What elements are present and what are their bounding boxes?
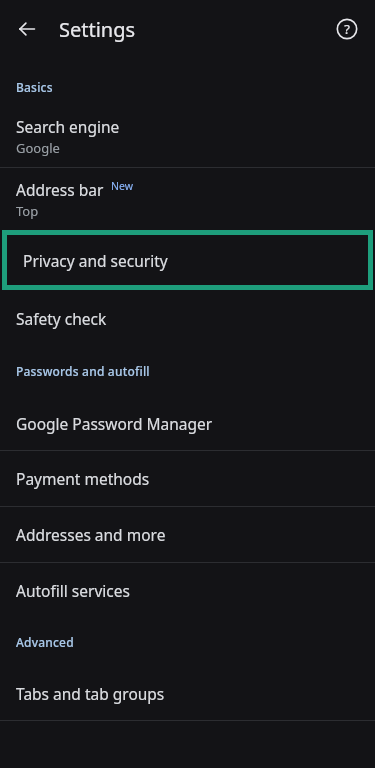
staticText: Safety check	[16, 308, 107, 329]
staticText: Tabs and tab groups	[16, 683, 165, 704]
staticText: Basics	[16, 79, 53, 95]
button[interactable]: Autofill services	[0, 563, 375, 618]
staticText: ?	[344, 20, 350, 38]
staticText: Payment methods	[16, 468, 150, 489]
button[interactable]: Addresses and more	[0, 507, 375, 562]
staticText: Advanced	[16, 634, 74, 650]
staticText: Search engine	[16, 116, 120, 137]
staticText: Privacy and security	[23, 250, 168, 271]
button[interactable]: Privacy and security	[0, 230, 375, 290]
staticText: Address bar	[16, 179, 104, 200]
staticText: Google	[16, 139, 60, 157]
staticText: Google Password Manager	[16, 413, 213, 434]
staticText: Settings	[59, 16, 136, 43]
button[interactable]: Back	[9, 11, 45, 47]
staticText: Autofill services	[16, 580, 130, 601]
staticText: Top	[16, 202, 39, 220]
button[interactable]: Help and feedback	[327, 9, 367, 49]
button[interactable]: Address bar	[0, 168, 375, 230]
button[interactable]: Payment methods	[0, 451, 375, 506]
button[interactable]: Search engine	[0, 106, 375, 167]
button[interactable]: Google Password Manager	[0, 396, 375, 450]
button[interactable]: Tabs and tab groups	[0, 666, 375, 720]
staticText: Passwords and autofill	[16, 363, 150, 379]
button[interactable]: Safety check	[0, 290, 375, 346]
staticText: Addresses and more	[16, 524, 166, 545]
staticText: New	[111, 179, 133, 193]
